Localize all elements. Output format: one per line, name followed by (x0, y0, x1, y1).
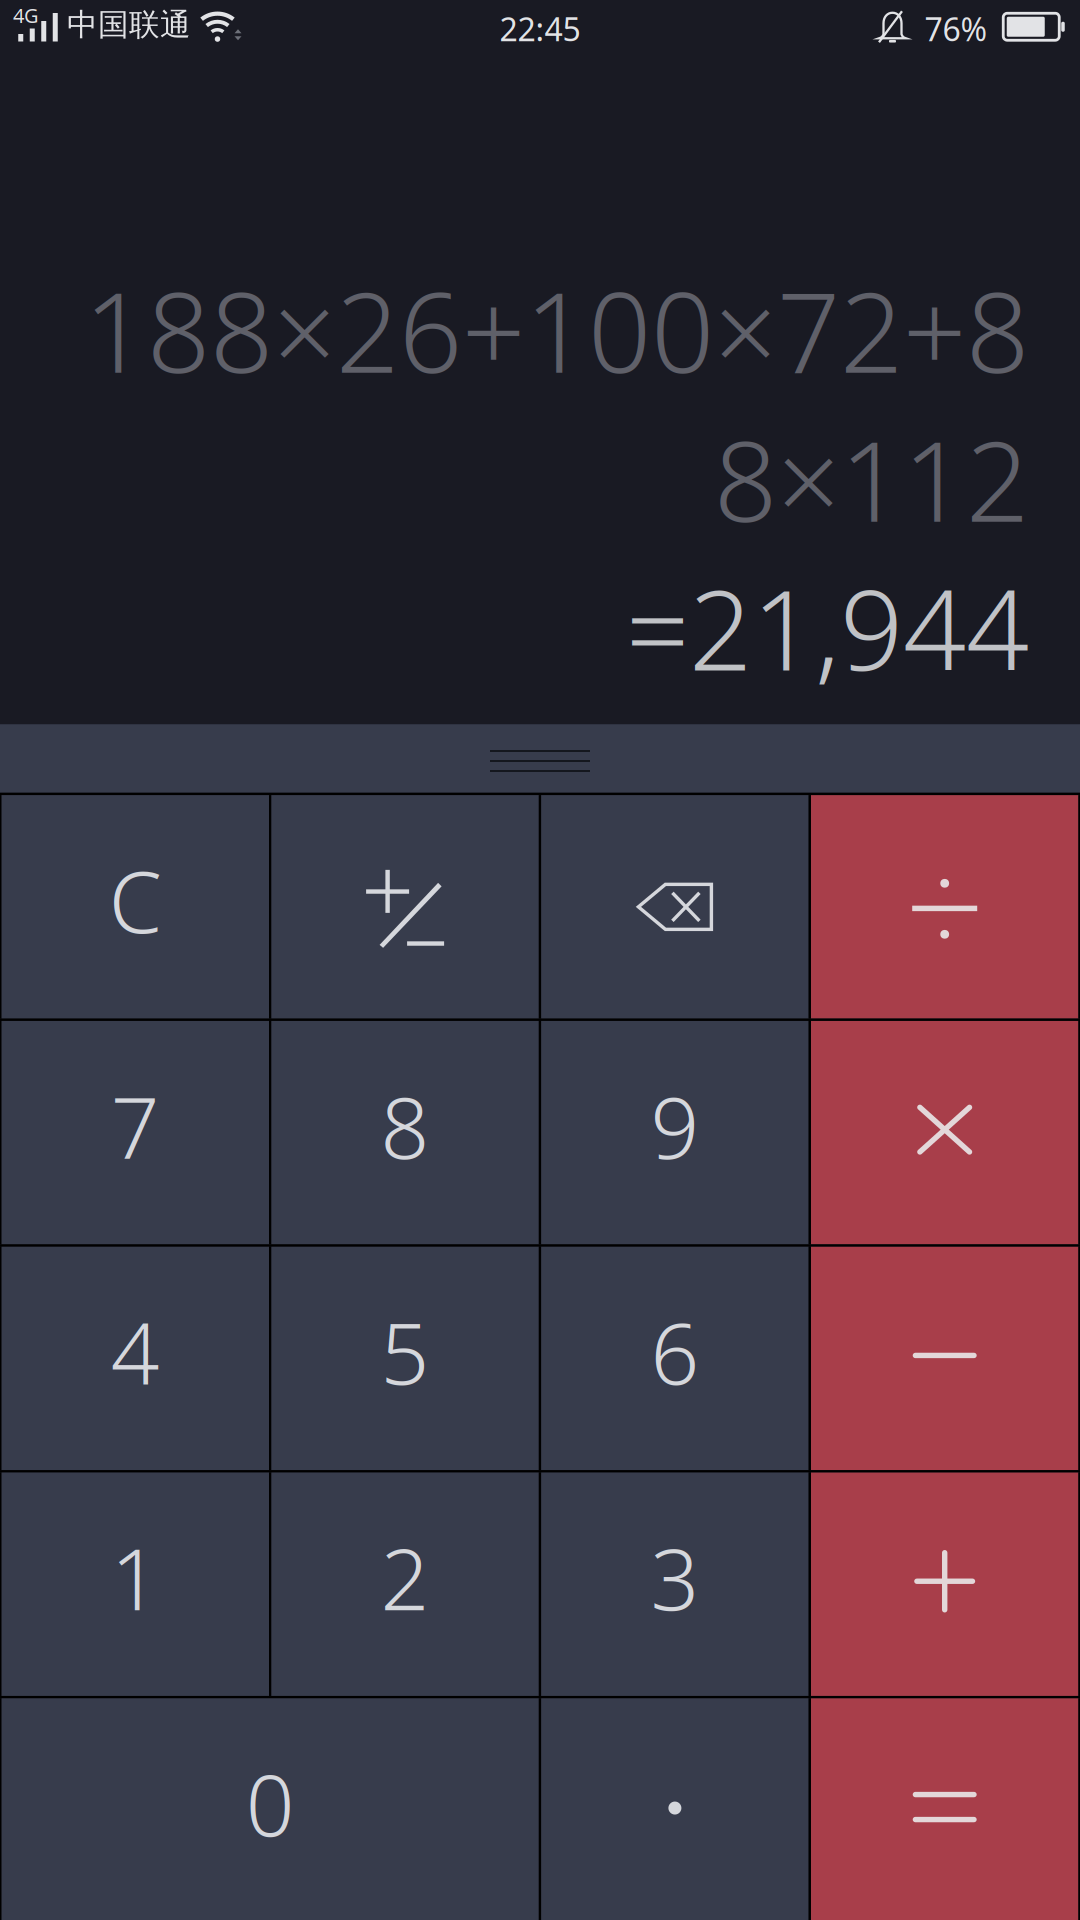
button[interactable]: Subtract (811, 1247, 1078, 1470)
staticText: 9 (650, 1069, 699, 1182)
staticText: 76% (924, 7, 987, 50)
staticText: 中国联通 (67, 6, 191, 44)
button[interactable]: Backspace (541, 795, 809, 1018)
staticText: 1 (111, 1521, 160, 1634)
staticText: 2 (381, 1521, 430, 1634)
button[interactable]: 6 (541, 1247, 809, 1470)
button[interactable]: Multiply (811, 1021, 1078, 1244)
button[interactable]: 8 (271, 1021, 539, 1244)
staticText: 0 (246, 1746, 295, 1860)
button[interactable]: Equals (811, 1698, 1078, 1920)
button[interactable]: 5 (271, 1247, 539, 1470)
staticText: 22:45 (499, 7, 580, 50)
staticText: C (109, 843, 162, 956)
staticText: =21,944 (626, 554, 1029, 701)
button[interactable]: 2 (271, 1472, 539, 1696)
staticText: 4G (13, 2, 39, 29)
button[interactable]: Add (811, 1472, 1078, 1696)
staticText: 5 (381, 1295, 430, 1408)
staticText: 188×26+100×72+8 (84, 256, 1029, 403)
button[interactable]: 9 (541, 1021, 809, 1244)
button[interactable]: 1 (2, 1472, 269, 1696)
button[interactable]: 7 (2, 1021, 269, 1244)
staticText: 6 (650, 1295, 699, 1408)
staticText: 7 (111, 1069, 160, 1182)
staticText: 4 (111, 1295, 160, 1408)
button[interactable]: C (2, 795, 269, 1018)
button[interactable]: 0 (2, 1698, 539, 1920)
staticText: 8×112 (714, 405, 1029, 552)
button[interactable]: 3 (541, 1472, 809, 1696)
staticText: 8 (381, 1069, 430, 1182)
button[interactable]: Divide (811, 795, 1078, 1018)
staticText: 3 (650, 1521, 699, 1634)
button[interactable]: 4 (2, 1247, 269, 1470)
button[interactable]: Decimal point (541, 1698, 809, 1920)
button[interactable]: Toggle sign (271, 795, 539, 1018)
